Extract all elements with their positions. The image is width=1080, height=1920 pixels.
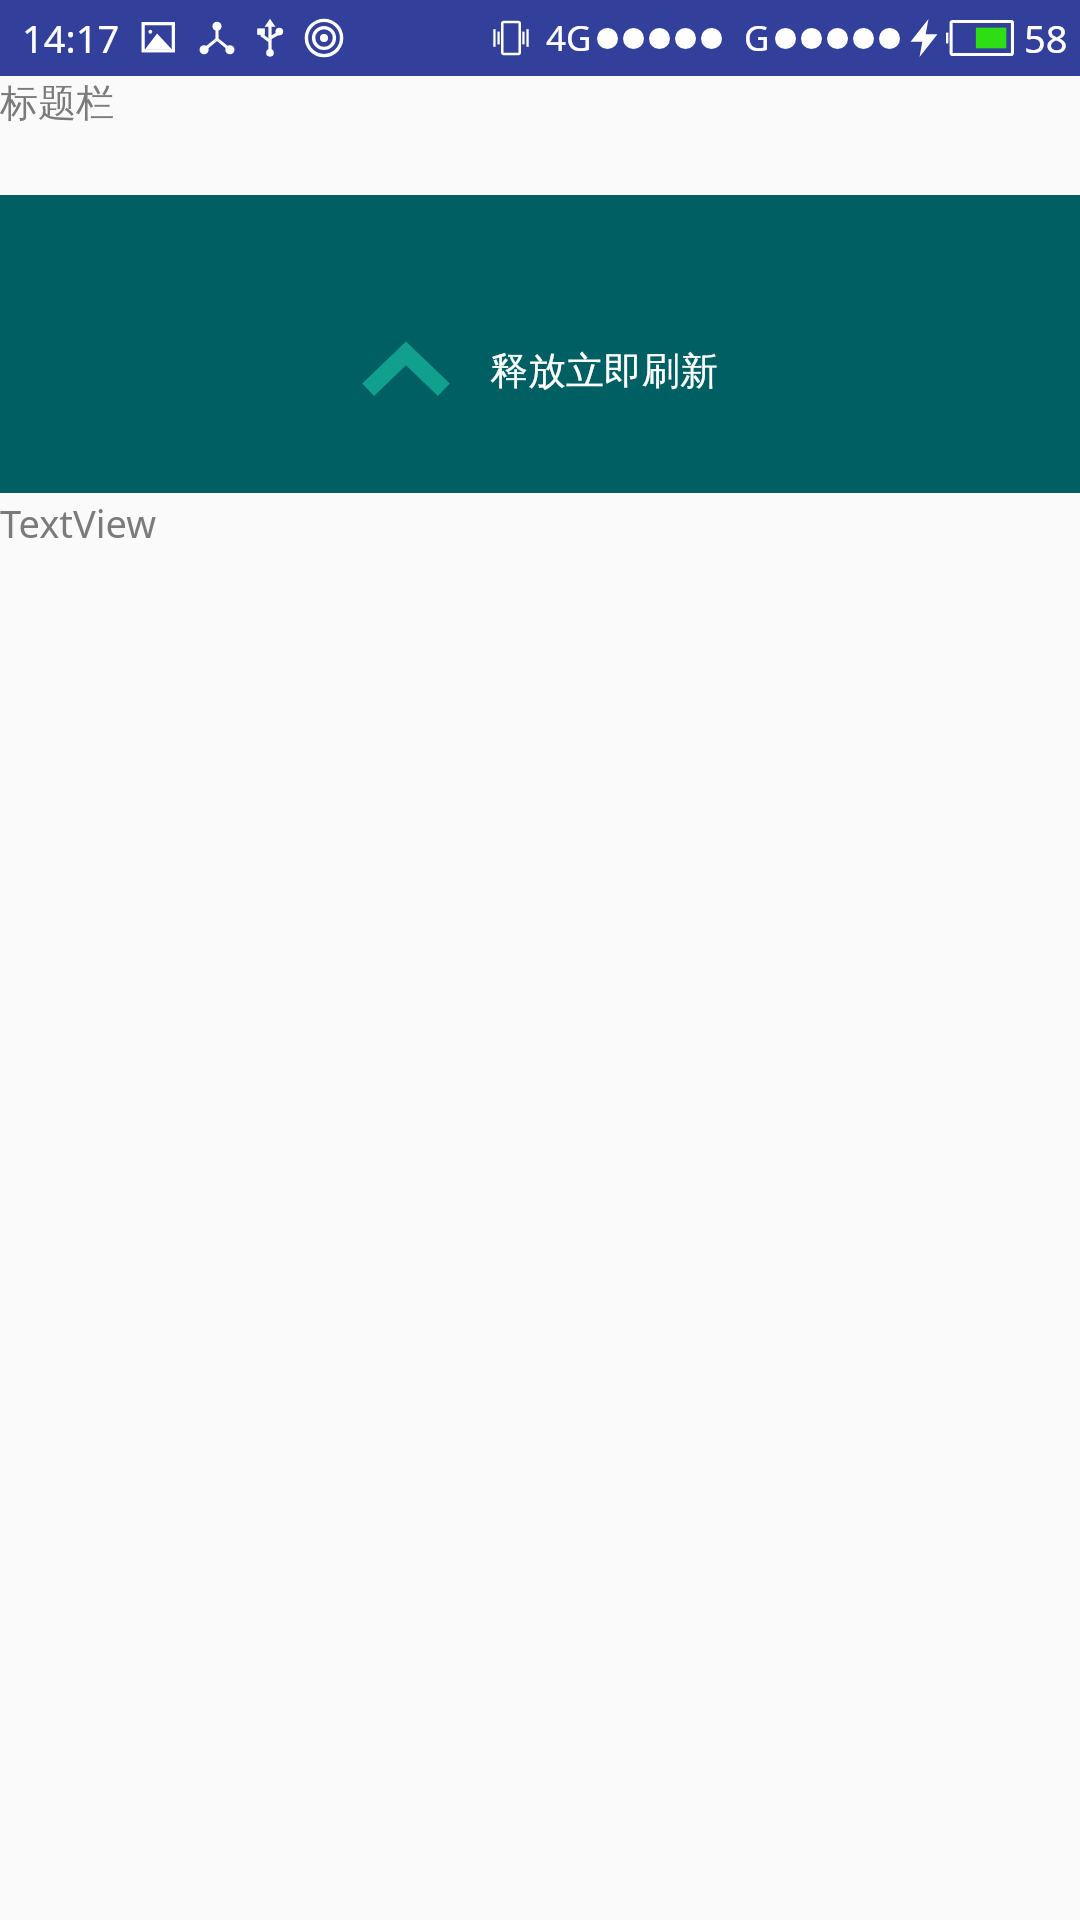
staticText: 58: [1024, 12, 1068, 64]
staticText: TextView: [0, 497, 157, 549]
staticText: 14:17: [22, 12, 120, 64]
other: Release to refresh: [362, 345, 450, 397]
staticText: 标题栏: [0, 79, 114, 127]
staticText: 4G: [546, 14, 592, 62]
button[interactable]: Release to refresh: [0, 195, 1080, 493]
staticText: G: [744, 14, 770, 62]
staticText: 释放立即刷新: [490, 347, 718, 395]
